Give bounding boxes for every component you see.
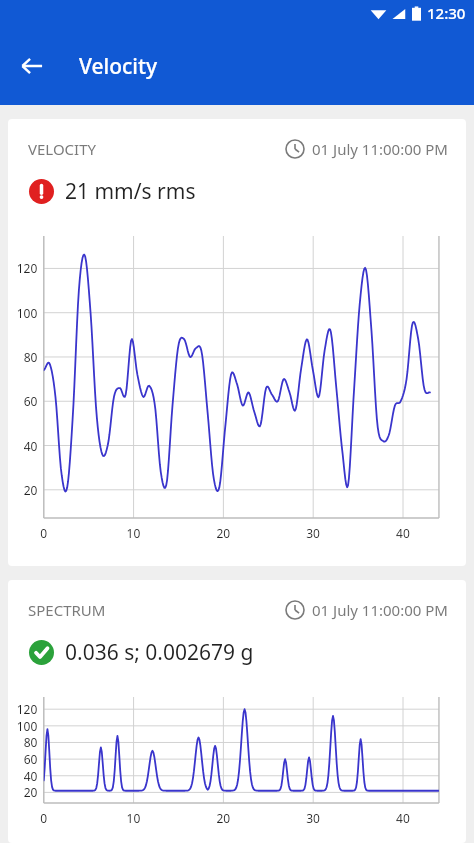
button[interactable]: VELOCITY: [8, 119, 466, 566]
staticText: 21 mm/s rms: [65, 177, 196, 206]
staticText: 01 July 11:00:00 PM: [312, 600, 448, 620]
button[interactable]: Back: [8, 42, 56, 90]
staticText: 12:30: [427, 3, 466, 23]
staticText: SPECTRUM: [28, 600, 106, 620]
staticText: 0.036 s; 0.002679 g: [65, 638, 254, 667]
staticText: Velocity: [79, 52, 158, 81]
staticText: VELOCITY: [28, 139, 97, 159]
staticText: 01 July 11:00:00 PM: [312, 139, 448, 159]
button[interactable]: SPECTRUM: [8, 580, 466, 843]
